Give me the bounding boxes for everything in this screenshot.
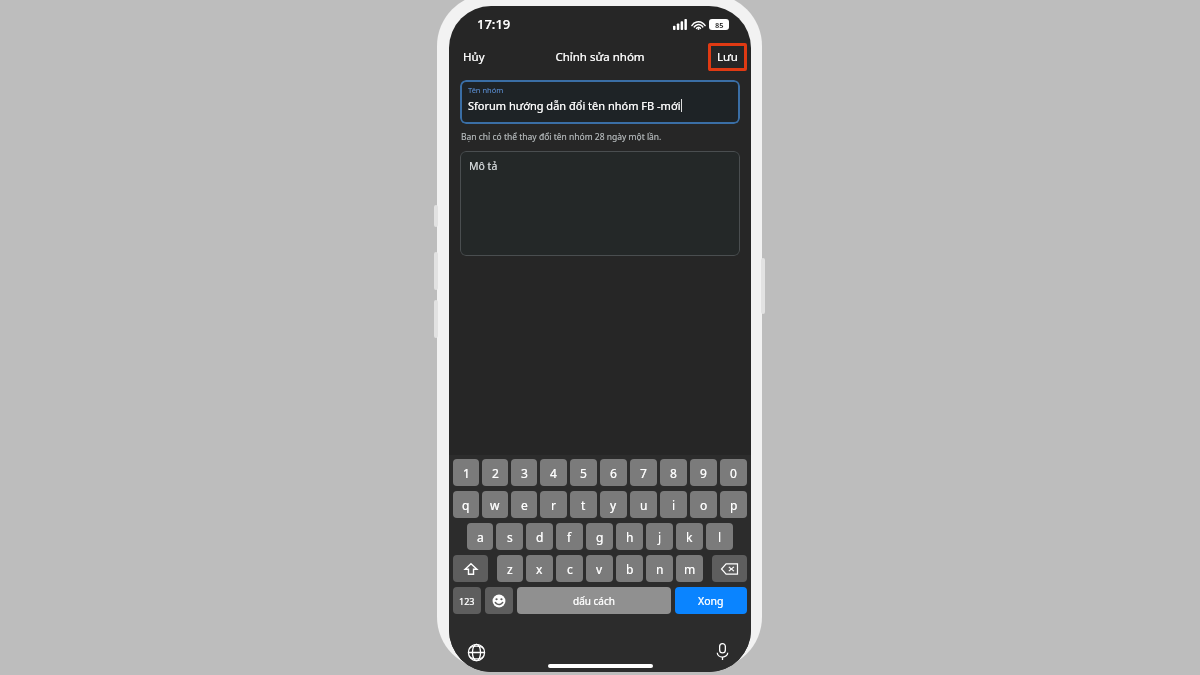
button[interactable]: e [511,491,537,518]
staticText: a [477,529,484,545]
button[interactable]: Hủy [449,45,499,69]
staticText: 1 [463,465,470,481]
staticText: n [656,561,664,577]
staticText: r [551,497,556,513]
button[interactable]: a [467,523,493,550]
staticText: z [507,561,513,577]
staticText: g [596,529,604,545]
button[interactable]: h [616,523,643,550]
button[interactable]: Mô tả [460,151,740,256]
button[interactable]: Emoji [485,587,513,614]
staticText: 8 [670,465,677,481]
staticText: 9 [700,465,707,481]
button[interactable]: 7 [630,459,657,486]
staticText: v [596,561,603,577]
button[interactable]: b [616,555,643,582]
staticText: l [718,529,722,545]
button[interactable]: dấu cách [517,587,671,614]
button[interactable]: 6 [600,459,627,486]
staticText: x [536,561,543,577]
staticText: d [536,529,544,545]
staticText: f [567,529,572,545]
button[interactable]: 1 [453,459,479,486]
staticText: q [462,497,470,513]
staticText: dấu cách [573,594,615,608]
button[interactable]: d [526,523,553,550]
staticText: 7 [640,465,647,481]
staticText: Chỉnh sửa nhóm [555,49,645,65]
button[interactable]: Lưu [708,43,747,71]
button[interactable]: l [706,523,733,550]
staticText: y [610,497,617,513]
staticText: Sforum hướng dẫn đổi tên nhóm FB -mới [468,98,681,113]
staticText: Hủy [463,49,485,65]
staticText: t [581,497,586,513]
button[interactable]: s [496,523,523,550]
button[interactable]: 2 [482,459,508,486]
staticText: 4 [550,465,557,481]
staticText: Bạn chỉ có thể thay đổi tên nhóm 28 ngày… [461,131,662,143]
staticText: s [507,529,513,545]
staticText: c [567,561,573,577]
staticText: j [658,529,662,545]
staticText: h [626,529,634,545]
staticText: m [684,561,696,577]
button[interactable]: z [497,555,523,582]
button[interactable]: Voice input [709,639,735,665]
button[interactable]: w [482,491,508,518]
button[interactable]: k [676,523,703,550]
button[interactable]: v [586,555,613,582]
button[interactable]: g [586,523,613,550]
button[interactable]: p [720,491,747,518]
staticText: 0 [730,465,737,481]
button[interactable]: u [630,491,657,518]
button[interactable]: r [540,491,567,518]
staticText: 2 [492,465,499,481]
button[interactable]: 4 [540,459,567,486]
button[interactable]: y [600,491,627,518]
button[interactable]: t [570,491,597,518]
staticText: o [700,497,708,513]
button[interactable]: m [676,555,703,582]
staticText: k [686,529,693,545]
staticText: Mô tả [469,159,498,173]
staticText: Lưu [717,49,738,65]
staticText: w [490,497,500,513]
staticText: p [730,497,738,513]
button[interactable]: n [646,555,673,582]
button[interactable]: i [660,491,687,518]
button[interactable]: 9 [690,459,717,486]
button[interactable]: 0 [720,459,747,486]
staticText: 17:19 [477,15,511,33]
button[interactable]: o [690,491,717,518]
button[interactable]: q [453,491,479,518]
button[interactable]: f [556,523,583,550]
button[interactable]: x [526,555,553,582]
button[interactable]: j [646,523,673,550]
staticText: u [640,497,648,513]
button[interactable]: Backspace [712,555,747,582]
staticText: 3 [521,465,528,481]
button[interactable]: 8 [660,459,687,486]
button[interactable]: c [556,555,583,582]
staticText: b [626,561,634,577]
staticText: 123 [459,595,475,607]
staticText: Xong [698,594,724,608]
button[interactable]: 5 [570,459,597,486]
button[interactable]: 123 [453,587,481,614]
staticText: i [672,497,676,513]
staticText: 5 [580,465,587,481]
staticText: e [521,497,528,513]
button[interactable]: 3 [511,459,537,486]
staticText: Tên nhóm [468,85,504,95]
button[interactable]: Xong [675,587,747,614]
button[interactable]: Tên nhóm [460,80,740,124]
staticText: 6 [610,465,617,481]
button[interactable]: Shift [453,555,488,582]
button[interactable]: Change keyboard language [463,639,489,665]
staticText: 85 [715,20,724,30]
